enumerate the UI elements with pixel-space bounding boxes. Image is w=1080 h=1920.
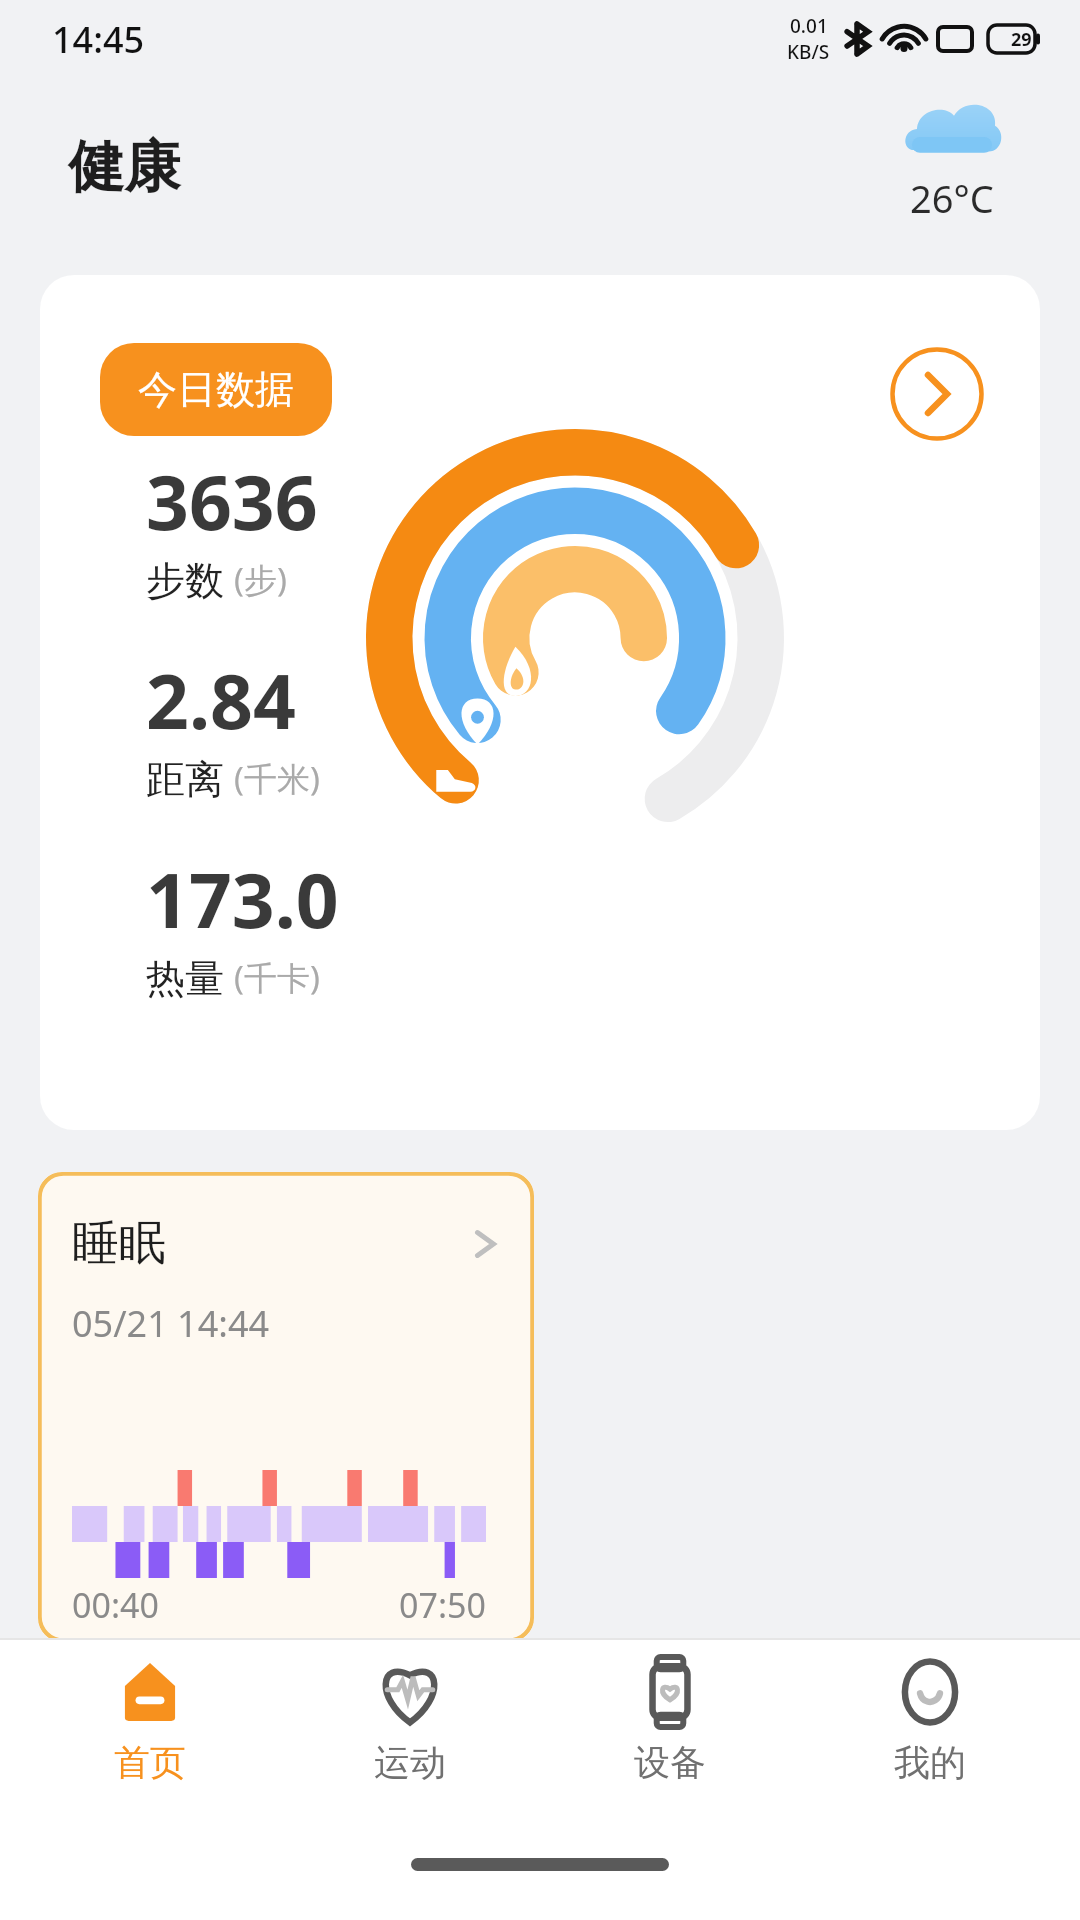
staticText: 运动 — [374, 1740, 446, 1785]
staticText: (千卡) — [234, 955, 320, 1000]
button[interactable]: 睡眠 — [38, 1172, 534, 1642]
staticText: 设备 — [634, 1740, 706, 1785]
staticText: 26°C — [910, 172, 994, 224]
staticText: 今日数据 — [138, 365, 294, 414]
staticText: 00:40 — [72, 1582, 159, 1628]
button[interactable]: 我的 — [820, 1640, 1040, 1858]
staticText: 0.01 — [790, 13, 828, 39]
button[interactable]: Weather — [902, 96, 1002, 224]
staticText: 14:45 — [52, 15, 145, 64]
staticText: (步) — [234, 557, 287, 602]
button[interactable]: 首页 — [40, 1640, 260, 1858]
staticText: KB/S — [787, 39, 830, 65]
staticText: 健康 — [68, 132, 180, 203]
staticText: 29 — [1011, 27, 1032, 52]
staticText: 3636 — [146, 450, 318, 552]
staticText: 睡眠 — [72, 1214, 166, 1273]
staticText: 距离 — [146, 755, 224, 804]
staticText: 首页 — [114, 1740, 186, 1785]
button[interactable]: More — [890, 347, 984, 441]
staticText: 热量 — [146, 954, 224, 1003]
button[interactable]: 设备 — [560, 1640, 780, 1858]
button[interactable]: 今日数据 — [40, 275, 1040, 1130]
staticText: 07:50 — [399, 1582, 486, 1628]
staticText: (千米) — [234, 756, 320, 801]
button[interactable]: 运动 — [300, 1640, 520, 1858]
button[interactable]: 今日数据 — [100, 343, 332, 436]
staticText: 2.84 — [146, 649, 296, 751]
staticText: 步数 — [146, 556, 224, 605]
staticText: 05/21 14:44 — [72, 1299, 270, 1348]
staticText: 173.0 — [146, 848, 339, 950]
staticText: 我的 — [894, 1740, 966, 1785]
